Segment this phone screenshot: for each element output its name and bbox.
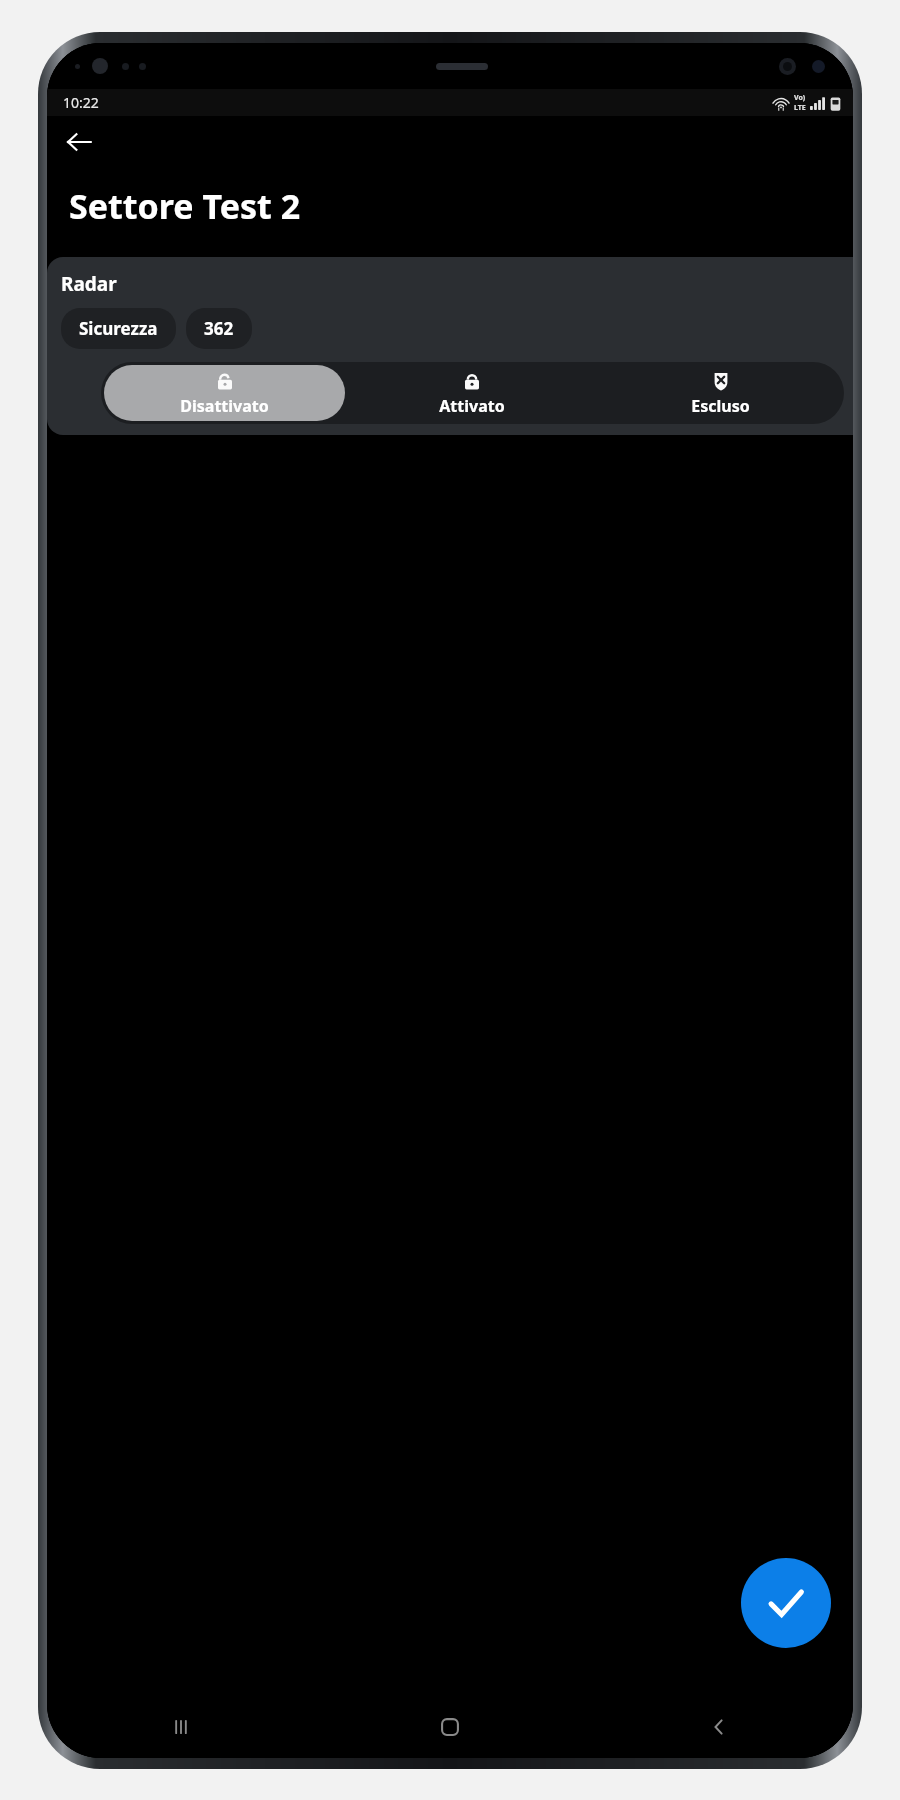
staticText: Radar [61, 271, 117, 297]
button[interactable]: Back [584, 1696, 853, 1758]
button[interactable]: 362 [186, 308, 252, 349]
button[interactable]: Sicurezza [61, 308, 176, 349]
staticText: 10:22 [63, 93, 99, 112]
button[interactable]: Escluso [599, 365, 841, 421]
button[interactable]: Recent apps [47, 1696, 315, 1758]
button[interactable]: Home [315, 1696, 584, 1758]
staticText: Sicurezza [79, 317, 158, 340]
button[interactable]: Confirm [741, 1558, 831, 1648]
button[interactable]: Radar [47, 257, 853, 435]
staticText: Settore Test 2 [69, 183, 301, 229]
button[interactable]: Back [57, 120, 101, 164]
button[interactable]: Disattivato [104, 365, 345, 421]
staticText: 362 [204, 317, 234, 340]
staticText: Attivato [439, 395, 505, 417]
staticText: Vo) [794, 93, 806, 103]
button[interactable]: Attivato [351, 365, 593, 421]
staticText: Escluso [691, 395, 750, 417]
staticText: LTE [794, 103, 806, 113]
staticText: Disattivato [180, 395, 269, 417]
